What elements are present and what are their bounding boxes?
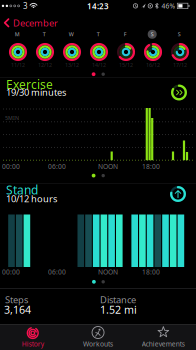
staticText: F	[124, 31, 127, 38]
staticText: 18:00	[142, 162, 160, 171]
staticText: December	[13, 17, 58, 29]
staticText: 17/12	[173, 61, 187, 69]
staticText: Stand	[6, 182, 38, 198]
staticText: T	[43, 31, 46, 38]
staticText: 3,164	[4, 302, 31, 317]
staticText: 12/12	[38, 61, 52, 69]
staticText: 3	[23, 0, 28, 11]
staticText: Steps	[5, 293, 28, 306]
staticText: 11/12	[11, 61, 25, 69]
button[interactable]: S activity	[167, 27, 193, 67]
staticText: Exercise	[6, 76, 53, 92]
button[interactable]: History	[0, 324, 65, 350]
staticText: 46%	[161, 2, 175, 10]
staticText: NOON	[98, 162, 118, 171]
staticText: 18:00	[142, 267, 160, 276]
staticText: 1.52 mi	[100, 302, 137, 317]
staticText: Achievements	[142, 339, 185, 348]
staticText: S	[151, 31, 154, 38]
staticText: W	[69, 31, 74, 38]
staticText: History	[22, 339, 44, 348]
button[interactable]: Achievements	[131, 324, 196, 350]
button[interactable]: Workouts	[65, 324, 131, 350]
staticText: 15/12	[119, 61, 133, 69]
button[interactable]: Back to December	[3, 17, 58, 29]
staticText: 5MIN	[5, 114, 19, 122]
staticText: Distance	[100, 293, 136, 306]
staticText: Workouts	[83, 339, 113, 348]
button[interactable]: F activity	[113, 27, 139, 67]
staticText: 14:23	[87, 1, 109, 11]
button[interactable]: T activity	[86, 27, 112, 67]
button[interactable]: W activity	[59, 27, 85, 67]
staticText: 14/12	[92, 61, 106, 69]
staticText: 06:00	[48, 162, 66, 171]
staticText: NOON	[98, 267, 118, 276]
button[interactable]: M activity	[5, 27, 31, 67]
staticText: T	[97, 31, 100, 38]
staticText: S	[178, 31, 181, 38]
button[interactable]: T activity	[32, 27, 58, 67]
staticText: 16/12	[146, 61, 160, 69]
staticText: 13/12	[65, 61, 79, 69]
staticText: 06:00	[48, 267, 66, 276]
staticText: 10/12 hours	[6, 192, 57, 205]
button[interactable]: S activity	[140, 27, 166, 67]
staticText: 00:00	[2, 267, 20, 276]
staticText: 19/30 minutes	[6, 86, 66, 98]
staticText: M	[15, 31, 20, 38]
staticText: 00:00	[2, 162, 20, 171]
